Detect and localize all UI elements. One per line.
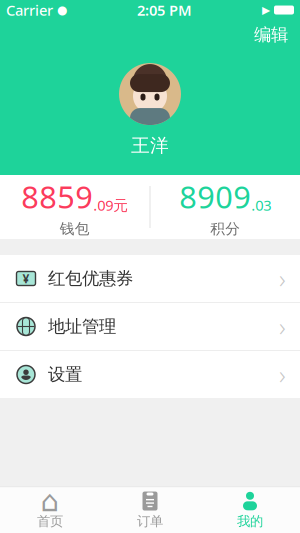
staticText: › [279,262,286,295]
button[interactable]: ⌂ [0,487,100,533]
staticText: 2:05 PM [137,0,192,20]
staticText: 红包优惠券 [48,268,133,289]
staticText: ⌂ [40,484,59,518]
button[interactable]: 地址管理 [0,303,300,350]
staticText: 钱包 [60,220,90,238]
button[interactable]: ¥ [0,255,300,302]
staticText: 设置 [48,364,82,385]
staticText: 8909 [179,176,251,217]
staticText: 8859 [21,176,93,217]
staticText: 首页 [37,513,63,529]
button[interactable]: 设置 [0,351,300,398]
staticText: ▶ [262,4,270,16]
staticText: 积分 [210,220,240,238]
staticText: .09元 [93,195,128,215]
staticText: › [279,310,286,343]
staticText: 订单 [137,513,163,529]
staticText: ● [57,3,67,17]
button[interactable]: 订单 [100,487,200,533]
staticText: › [279,358,286,391]
staticText: 地址管理 [48,316,116,337]
staticText: Carrier [6,0,53,20]
button[interactable]: 我的 [200,487,300,533]
staticText: ¥ [22,270,29,286]
button[interactable]: 编辑 [244,20,298,49]
staticText: .03 [251,195,271,215]
staticText: 我的 [237,513,263,529]
staticText: 王洋 [131,134,169,157]
staticText: 编辑 [254,24,288,45]
